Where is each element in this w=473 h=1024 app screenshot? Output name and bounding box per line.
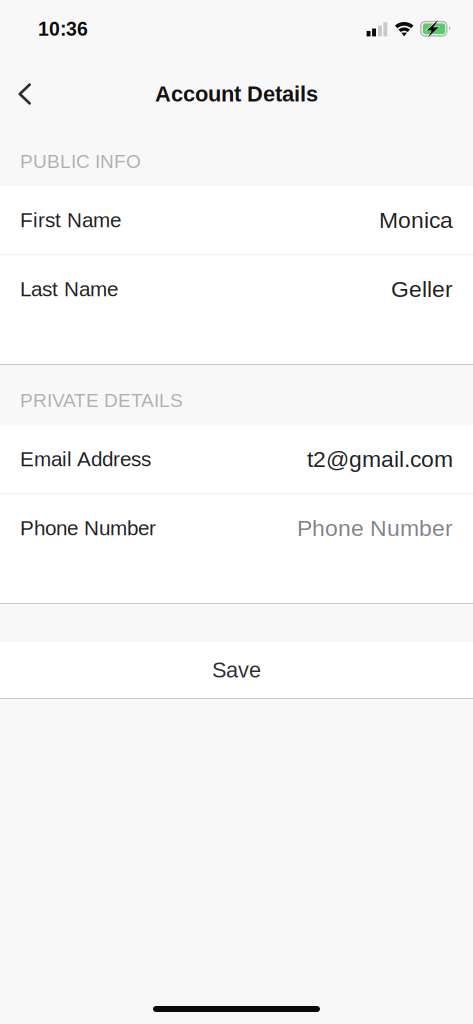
staticText: t2@gmail.com [307,446,453,472]
staticText: Email Address [20,447,151,471]
staticText: Phone Number [297,515,453,541]
staticText: First Name [20,208,121,232]
button[interactable]: Email Address [0,425,473,493]
button[interactable]: Save [0,642,473,698]
staticText: Monica [379,207,453,233]
button[interactable]: Back [0,58,49,130]
button[interactable]: Phone Number [0,494,473,562]
button[interactable]: First Name [0,186,473,254]
staticText: Save [212,658,261,682]
staticText: Last Name [20,277,118,301]
staticText: Phone Number [20,516,156,540]
button[interactable]: Last Name [0,255,473,323]
staticText: PRIVATE DETAILS [20,390,183,411]
staticText: Geller [391,276,453,302]
staticText: 10:36 [38,18,88,40]
staticText: PUBLIC INFO [20,151,141,172]
staticText: Account Details [155,82,318,106]
